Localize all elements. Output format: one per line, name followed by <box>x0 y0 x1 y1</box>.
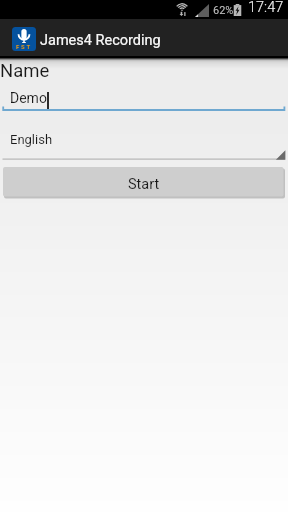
button[interactable]: Start <box>3 167 285 198</box>
staticText: James4 Recording <box>40 32 161 49</box>
staticText: Demo <box>10 90 47 106</box>
staticText: FST <box>16 43 33 50</box>
button[interactable]: Demo <box>0 84 288 112</box>
other: App icon <box>12 27 36 51</box>
staticText: Name <box>0 60 50 82</box>
staticText: 17:47 <box>248 0 284 16</box>
button[interactable]: English <box>0 128 288 160</box>
staticText: Start <box>128 176 160 193</box>
staticText: 62% <box>213 4 234 17</box>
staticText: English <box>10 132 53 147</box>
